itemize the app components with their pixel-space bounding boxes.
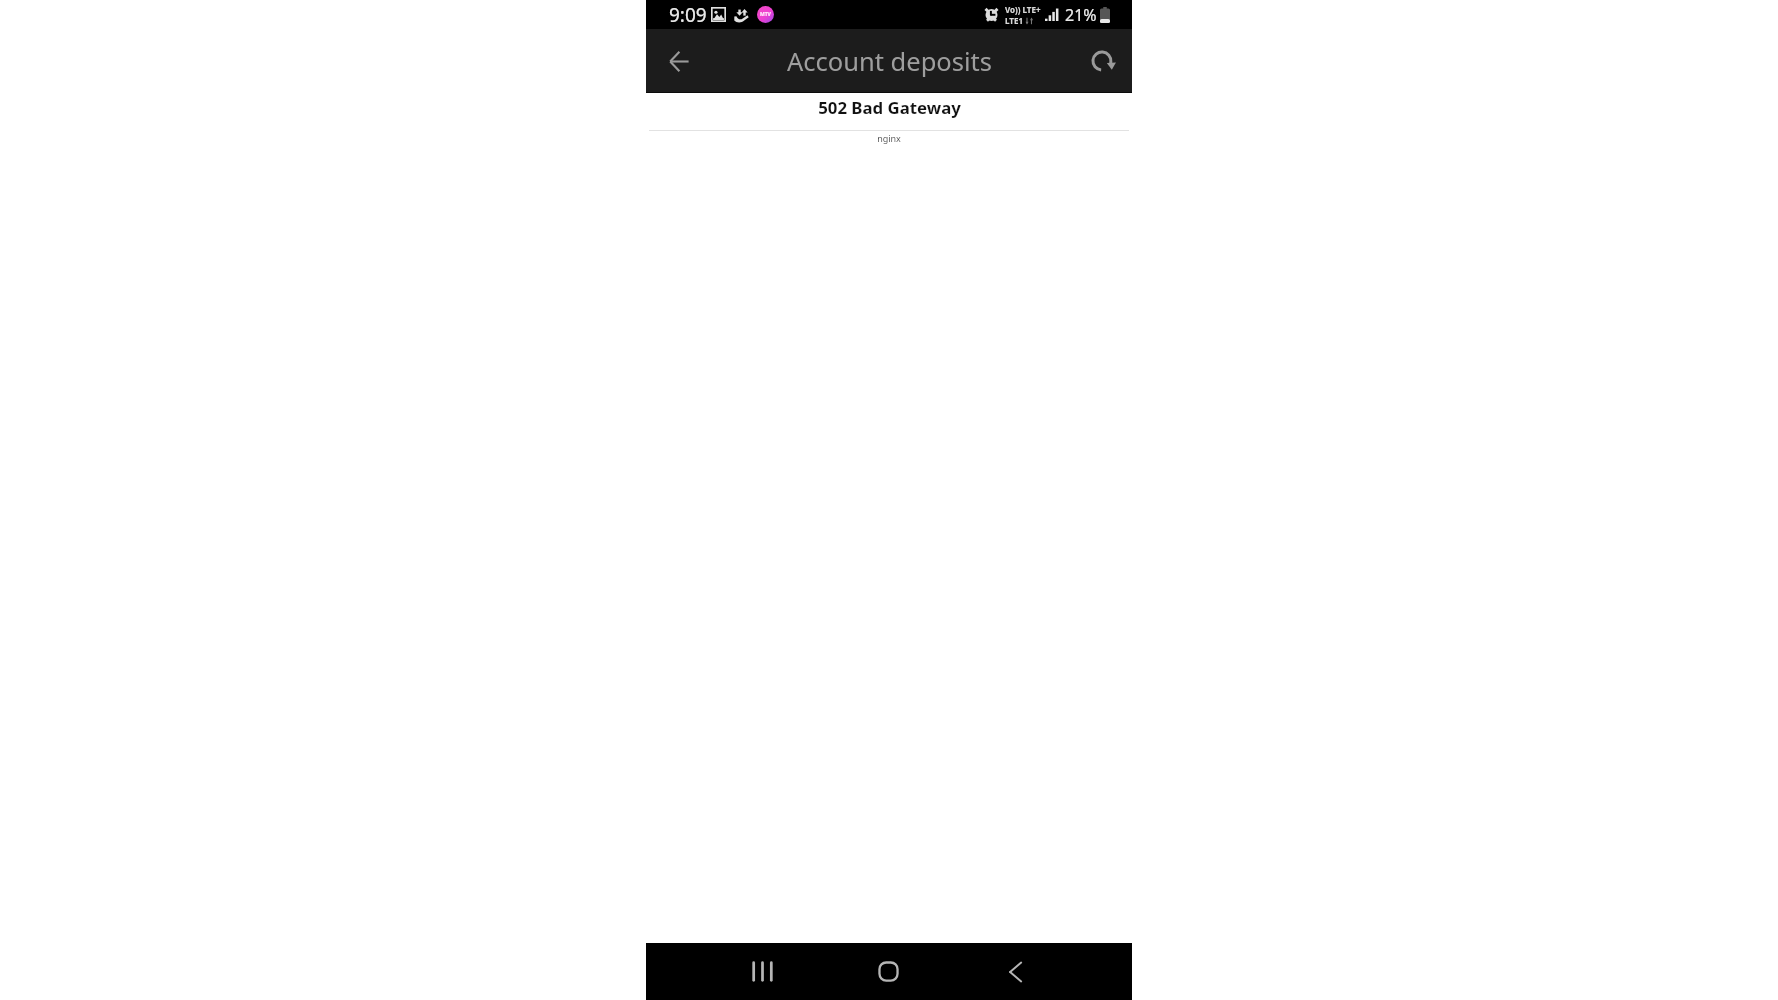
button[interactable]: Refresh <box>1086 43 1122 79</box>
button[interactable]: Home <box>825 943 952 1000</box>
staticText: 9:09 <box>669 2 707 28</box>
staticText: LTE1 <box>1005 15 1023 26</box>
button[interactable]: Recents <box>699 943 825 1000</box>
staticText: nginx <box>877 132 901 144</box>
staticText: 21% <box>1065 4 1097 26</box>
staticText: MTV <box>760 11 771 18</box>
staticText: 502 Bad Gateway <box>818 96 961 119</box>
button[interactable]: Back <box>661 43 697 79</box>
staticText: Account deposits <box>787 44 992 79</box>
button[interactable]: Back <box>952 943 1079 1000</box>
staticText: Vo)) LTE+ <box>1005 4 1041 15</box>
